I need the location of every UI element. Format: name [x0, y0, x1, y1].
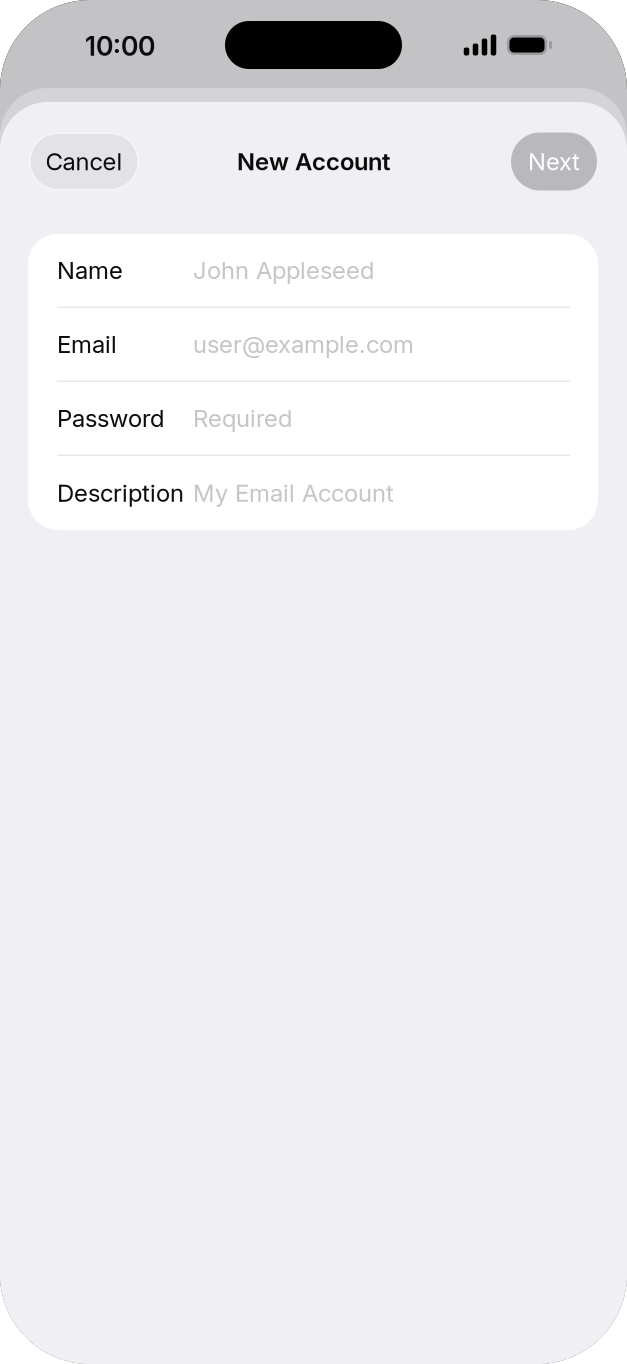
- staticText: My Email Account: [193, 478, 394, 507]
- staticText: Email: [57, 330, 117, 359]
- button[interactable]: Name: [28, 234, 598, 308]
- button[interactable]: Password: [28, 382, 598, 456]
- staticText: John Appleseed: [193, 256, 374, 285]
- staticText: Description: [57, 478, 184, 507]
- button[interactable]: Email: [28, 308, 598, 382]
- button[interactable]: Next: [511, 132, 597, 190]
- staticText: Required: [193, 404, 292, 433]
- staticText: Password: [57, 404, 164, 433]
- staticText: Name: [57, 256, 123, 285]
- staticText: Next: [528, 147, 580, 176]
- button[interactable]: Description: [28, 456, 598, 530]
- staticText: Cancel: [45, 147, 122, 176]
- button[interactable]: Cancel: [29, 132, 139, 190]
- staticText: user@example.com: [193, 330, 414, 359]
- staticText: 10:00: [85, 30, 155, 62]
- staticText: New Account: [237, 147, 390, 176]
